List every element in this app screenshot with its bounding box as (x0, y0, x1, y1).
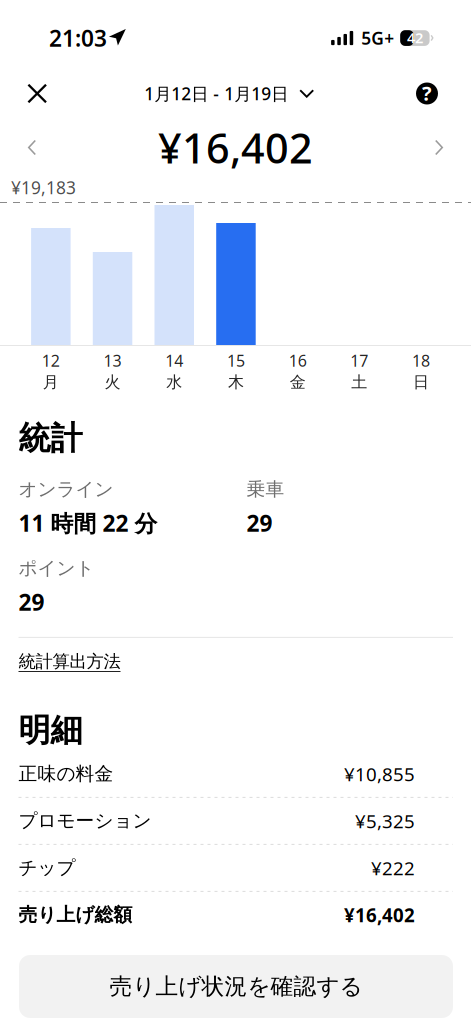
staticText: チップ (18, 856, 75, 879)
staticText: 日 (413, 372, 429, 392)
staticText: 18 (412, 350, 430, 371)
staticText: 正味の料金 (18, 762, 113, 785)
staticText: ¥16,402 (158, 120, 313, 175)
staticText: 15 (227, 350, 245, 371)
staticText: 16 (289, 350, 307, 371)
staticText: 5G+ (361, 26, 394, 49)
staticText: プロモーション (18, 809, 151, 832)
button[interactable]: Help (383, 65, 471, 122)
button[interactable]: Previous week (0, 122, 64, 173)
staticText: ¥16,402 (344, 902, 415, 927)
staticText: 金 (290, 372, 306, 392)
staticText: 13 (104, 350, 122, 371)
staticText: オンライン (18, 478, 113, 501)
button[interactable]: Close (0, 65, 74, 122)
staticText: 統計 (18, 419, 82, 458)
staticText: 水 (166, 372, 182, 392)
staticText: 売り上げ総額 (18, 903, 132, 926)
staticText: ポイント (18, 557, 94, 580)
staticText: 17 (350, 350, 368, 371)
staticText: 木 (228, 372, 244, 392)
staticText: 土 (351, 372, 367, 392)
staticText: 12 (42, 350, 60, 371)
staticText: 42 (407, 28, 423, 47)
button[interactable]: 統計算出方法 (18, 647, 120, 676)
staticText: ? (422, 80, 432, 106)
button[interactable]: Next week (407, 122, 471, 173)
staticText: ¥222 (371, 855, 415, 880)
staticText: 明細 (18, 711, 82, 750)
staticText: ¥19,183 (11, 176, 76, 199)
staticText: 火 (105, 372, 121, 392)
staticText: 29 (246, 508, 272, 538)
staticText: 月 (43, 372, 59, 392)
button[interactable]: 売り上げ状況を確認する (19, 955, 453, 1018)
staticText: 乗車 (246, 478, 284, 501)
staticText: 11 時間 22 分 (18, 508, 157, 538)
staticText: 売り上げ状況を確認する (109, 973, 362, 1000)
staticText: ¥10,855 (344, 761, 415, 786)
staticText: ¥5,325 (355, 808, 415, 833)
staticText: 1月12日 - 1月19日 (144, 82, 288, 105)
staticText: 14 (165, 350, 183, 371)
staticText: 29 (18, 587, 44, 617)
staticText: 21:03 (49, 23, 107, 53)
staticText: 統計算出方法 (18, 651, 120, 672)
button[interactable]: 1月12日 - 1月19日 (138, 65, 319, 122)
